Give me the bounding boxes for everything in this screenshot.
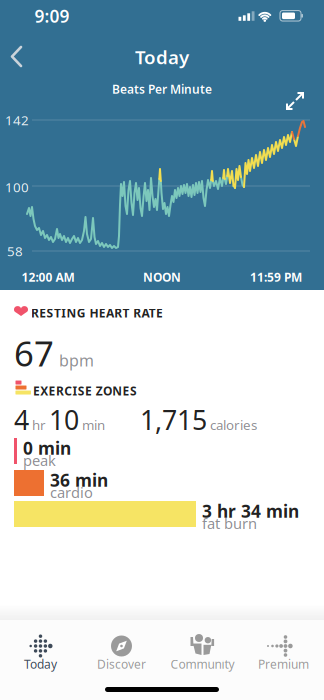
staticText: hr <box>32 416 46 434</box>
staticText: Community <box>170 656 234 672</box>
staticText: peak <box>23 450 56 470</box>
staticText: 12:00 AM <box>21 269 74 285</box>
staticText: Premium <box>258 656 309 672</box>
staticText: 67 <box>14 330 54 376</box>
staticText: Discover <box>97 656 146 672</box>
staticText: 9:09 <box>34 4 69 27</box>
staticText: bpm <box>59 350 94 371</box>
staticText: calories <box>210 416 257 434</box>
staticText: 58 <box>7 242 23 260</box>
staticText: 100 <box>5 178 29 196</box>
staticText: 4 <box>14 402 29 437</box>
staticText: NOON <box>143 269 181 285</box>
staticText: 1,715 <box>140 402 207 437</box>
button[interactable]: Community <box>162 619 324 700</box>
staticText: EXERCISE ZONES <box>33 383 137 399</box>
staticText: cardio <box>50 482 93 502</box>
button[interactable]: Premium <box>243 619 324 700</box>
staticText: 0 min <box>23 436 71 459</box>
staticText: 11:59 PM <box>250 269 302 285</box>
staticText: 3 hr 34 min <box>202 499 299 522</box>
staticText: 10 <box>49 402 79 437</box>
staticText: 142 <box>5 111 29 129</box>
staticText: Today <box>24 656 57 672</box>
button[interactable]: Expand chart <box>0 0 40 40</box>
staticText: 36 min <box>50 468 108 491</box>
staticText: RESTING HEART RATE <box>31 305 163 321</box>
staticText: Beats Per Minute <box>112 81 212 97</box>
button[interactable]: Discover <box>81 619 324 700</box>
staticText: min <box>82 416 105 434</box>
staticText: Today <box>135 45 189 69</box>
button[interactable]: Today <box>0 619 324 700</box>
staticText: fat burn <box>202 513 257 533</box>
